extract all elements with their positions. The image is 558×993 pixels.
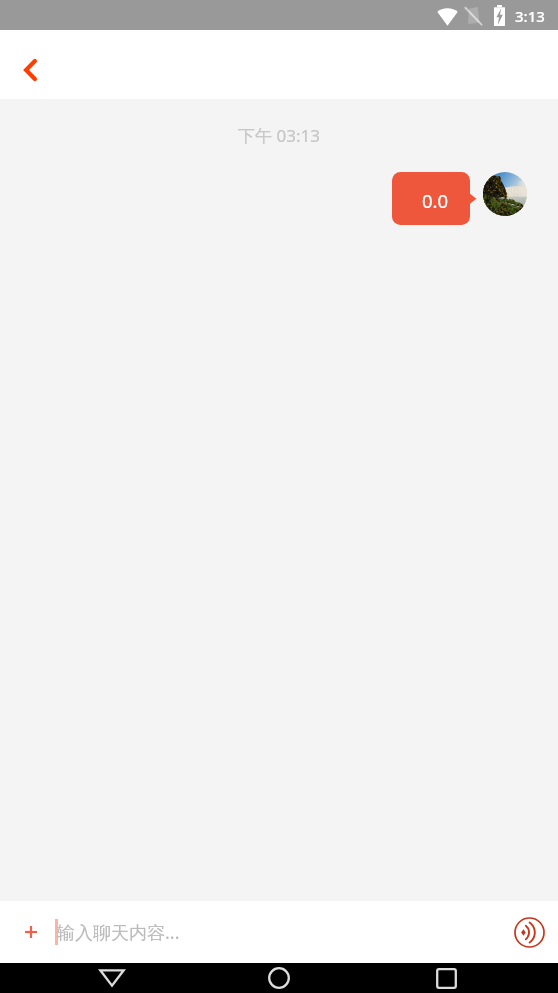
staticText: 0.0 — [422, 188, 449, 213]
button[interactable]: Recent apps — [416, 963, 476, 993]
staticText: 输入聊天内容... — [57, 920, 180, 945]
button[interactable]: Home — [249, 963, 309, 993]
button[interactable]: Voice message — [500, 901, 558, 963]
button[interactable]: Back — [0, 30, 58, 99]
button[interactable]: Add attachment — [0, 901, 56, 963]
button[interactable]: Back — [82, 963, 142, 993]
staticText: 下午 03:13 — [0, 124, 558, 147]
staticText: 3:13 — [515, 6, 545, 26]
button[interactable]: 输入聊天内容... — [56, 901, 500, 963]
